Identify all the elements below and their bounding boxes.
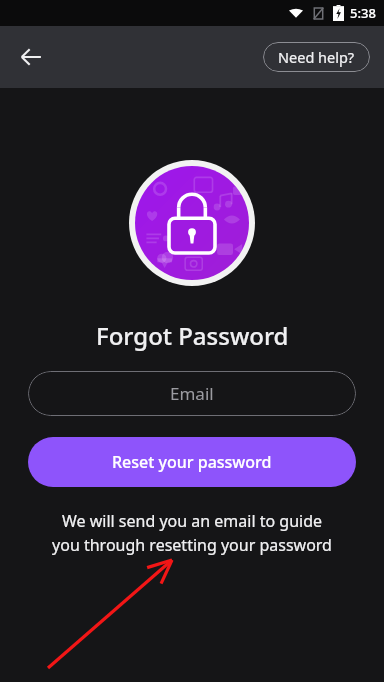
staticText: We will send you an email to guide you t… <box>52 510 332 556</box>
staticText: Email <box>170 382 214 405</box>
staticText: 5:38 <box>350 4 376 22</box>
button[interactable]: Need help? <box>263 42 370 72</box>
button[interactable]: Back <box>10 36 52 78</box>
button[interactable]: Reset your password <box>28 437 356 487</box>
button[interactable]: Email <box>28 371 356 416</box>
staticText: Need help? <box>278 47 355 67</box>
staticText: Forgot Password <box>96 319 289 352</box>
staticText: Reset your password <box>112 451 272 473</box>
